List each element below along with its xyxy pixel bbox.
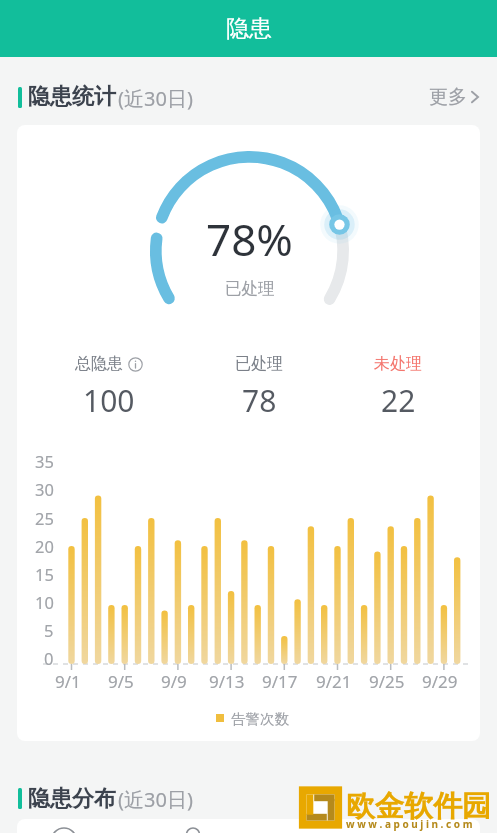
staticText: 已处理	[225, 278, 275, 299]
staticText: (近30日)	[118, 786, 193, 813]
staticText: 未处理	[374, 354, 422, 374]
staticText: 5	[44, 619, 54, 641]
staticText: 告警次数	[231, 710, 289, 728]
staticText: 9/13	[209, 670, 245, 693]
staticText: 9/29	[422, 670, 458, 693]
button[interactable]: 告警次数	[216, 710, 289, 728]
staticText: 20	[35, 535, 54, 557]
staticText: 25	[35, 507, 54, 529]
staticText: 30	[35, 478, 54, 500]
staticText: 9/9	[161, 670, 187, 693]
staticText: 78%	[206, 209, 293, 269]
staticText: 100	[83, 380, 135, 421]
button[interactable]: 未处理	[323, 354, 473, 421]
button[interactable]: 更多	[429, 75, 479, 119]
staticText: 9/21	[316, 670, 352, 693]
button[interactable]: 已处理	[184, 354, 334, 421]
staticText: 15	[35, 563, 54, 585]
staticText: 9/25	[369, 670, 405, 693]
staticText: 总隐患	[75, 354, 123, 374]
staticText: 更多	[429, 85, 467, 109]
other: 说明	[128, 357, 143, 372]
staticText: (近30日)	[118, 85, 193, 112]
staticText: 9/1	[55, 670, 81, 693]
staticText: 0	[44, 647, 54, 669]
button[interactable]: 总隐患	[34, 354, 184, 421]
staticText: 隐患分布	[28, 785, 116, 813]
staticText: 隐患	[226, 14, 272, 43]
staticText: 9/17	[262, 670, 298, 693]
staticText: 已处理	[235, 354, 283, 374]
staticText: 9/5	[108, 670, 134, 693]
staticText: 78	[242, 380, 277, 421]
staticText: 隐患统计	[28, 83, 116, 111]
staticText: w w w . a p o u j i n . c o m	[346, 817, 473, 831]
staticText: 10	[35, 591, 54, 613]
staticText: 22	[381, 380, 416, 421]
staticText: 35	[35, 450, 54, 472]
staticText: 欧金软件园	[346, 788, 491, 825]
